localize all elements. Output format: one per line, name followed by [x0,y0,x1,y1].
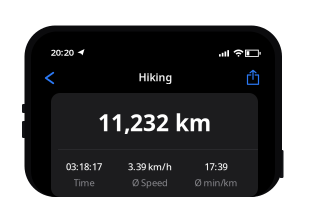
button[interactable]: Share [240,65,266,89]
staticText: Hiking [138,70,172,84]
staticText: 3.39 km/h [128,160,172,173]
staticText: 17:39 [204,160,227,173]
staticText: 20:20 [51,46,74,58]
staticText: Ø Speed [132,176,168,189]
staticText: 03:18:17 [66,160,102,173]
button[interactable]: Back [36,66,62,90]
staticText: 11,232 km [98,107,211,138]
staticText: Time [73,176,94,189]
staticText: Ø min/km [194,176,237,189]
